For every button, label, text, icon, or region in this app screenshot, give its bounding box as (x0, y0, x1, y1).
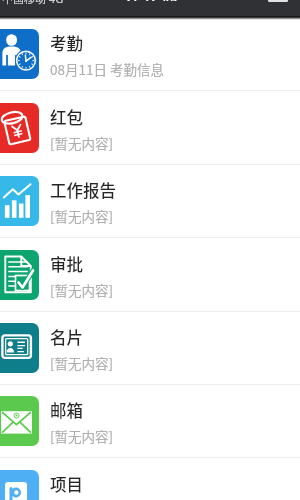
button[interactable]: 审批 (0, 239, 300, 312)
staticText: 考勤 (50, 31, 83, 55)
staticText: [暂无内容] (50, 426, 114, 446)
staticText: 中国移动 4G (2, 0, 64, 6)
button[interactable]: 项目 (0, 459, 300, 500)
button[interactable]: 红包 (0, 92, 300, 165)
staticText: [暂无内容] (50, 206, 114, 226)
staticText: [暂无内容] (50, 353, 114, 373)
staticText: 工作报告 (50, 178, 116, 202)
staticText: 08月11日 考勤信息 (50, 59, 164, 79)
button[interactable]: 名片 (0, 312, 300, 385)
staticText: 邮箱 (50, 398, 83, 422)
staticText: 项目 (50, 472, 83, 496)
button[interactable]: 邮箱 (0, 385, 300, 458)
staticText: 名片 (50, 325, 83, 349)
button[interactable]: 工作报告 (0, 165, 300, 238)
staticText: 红包 (50, 105, 83, 129)
staticText: 办公通 (122, 0, 179, 1)
staticText: 审批 (50, 252, 83, 276)
staticText: [暂无内容] (50, 133, 114, 153)
staticText: [暂无内容] (50, 280, 114, 300)
button[interactable]: 考勤 (0, 18, 300, 91)
